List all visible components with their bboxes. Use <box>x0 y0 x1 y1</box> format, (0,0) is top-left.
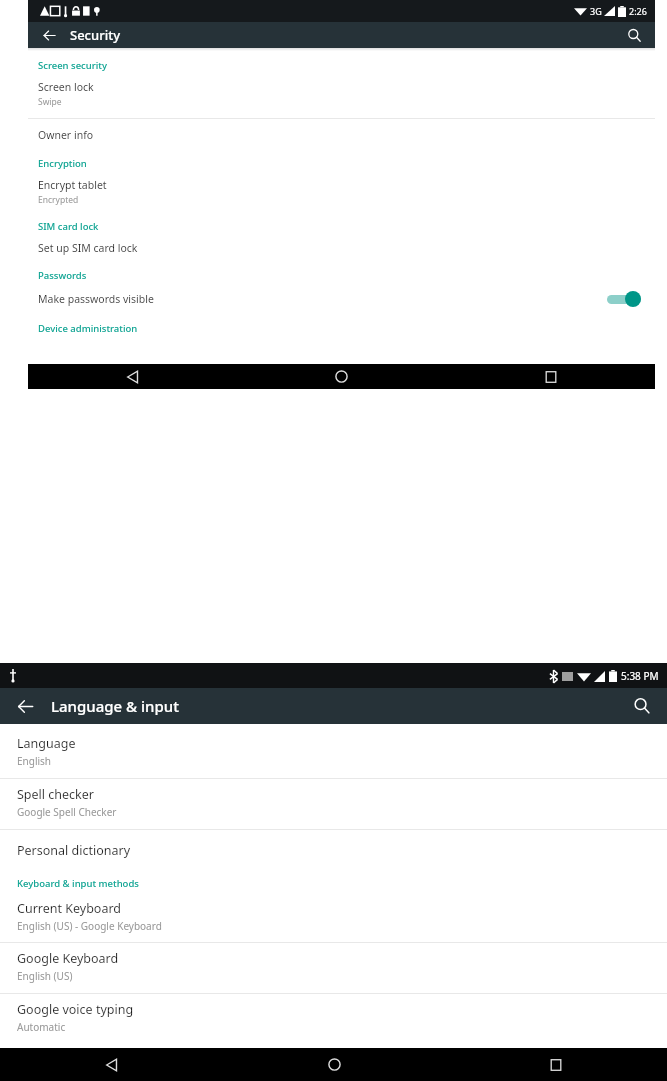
button[interactable]: Navigate up <box>11 692 39 720</box>
button[interactable]: Search <box>628 692 656 720</box>
button[interactable]: Home <box>237 364 446 389</box>
staticText: Encrypt tablet <box>38 178 107 192</box>
staticText: Screen lock <box>38 80 94 94</box>
button[interactable]: Recent apps <box>445 1048 667 1081</box>
staticText: Owner info <box>38 128 94 142</box>
staticText: Language & input <box>51 696 179 716</box>
button[interactable]: Navigate up <box>38 24 60 46</box>
staticText: Set up SIM card lock <box>38 241 138 255</box>
button[interactable]: Personal dictionary <box>0 830 667 871</box>
button[interactable]: Encrypt tablet <box>28 174 655 210</box>
button[interactable]: Owner info <box>28 119 655 151</box>
staticText: Security <box>70 26 120 44</box>
button[interactable] <box>607 290 641 308</box>
staticText: English <box>17 754 52 768</box>
button[interactable]: Screen lock <box>28 76 655 112</box>
button[interactable]: Language <box>0 728 667 775</box>
staticText: SIM card lock <box>38 220 99 233</box>
staticText: Screen security <box>38 59 107 72</box>
staticText: English (US) - Google Keyboard <box>17 919 162 933</box>
button[interactable]: Recent apps <box>446 364 655 389</box>
staticText: 2:26 <box>629 5 647 17</box>
staticText: Keyboard & input methods <box>17 877 139 890</box>
staticText: Encryption <box>38 157 87 170</box>
staticText: Google voice typing <box>17 1001 134 1018</box>
staticText: Google Spell Checker <box>17 805 117 819</box>
button[interactable]: Back <box>28 364 237 389</box>
button[interactable]: Set up SIM card lock <box>28 237 655 259</box>
staticText: Language <box>17 735 76 752</box>
staticText: Google Keyboard <box>17 950 119 967</box>
button[interactable]: Make passwords visible <box>28 286 655 312</box>
staticText: Passwords <box>38 269 87 282</box>
staticText: Make passwords visible <box>38 292 154 306</box>
button[interactable]: Spell checker <box>0 779 667 826</box>
button[interactable]: Search <box>623 24 645 46</box>
staticText: Personal dictionary <box>17 842 131 859</box>
button[interactable]: Current Keyboard <box>0 895 667 938</box>
button[interactable]: Home <box>223 1048 445 1081</box>
button[interactable]: Back <box>0 1048 223 1081</box>
staticText: English (US) <box>17 969 73 983</box>
staticText: 3G <box>590 5 602 17</box>
button[interactable]: Google voice typing <box>0 994 667 1041</box>
button[interactable]: Google Keyboard <box>0 943 667 990</box>
staticText: Automatic <box>17 1020 66 1034</box>
staticText: Current Keyboard <box>17 900 122 917</box>
staticText: Encrypted <box>38 194 79 206</box>
staticText: Spell checker <box>17 786 94 803</box>
staticText: Device administration <box>38 322 138 335</box>
staticText: 5:38 PM <box>621 669 659 683</box>
staticText: Swipe <box>38 96 62 108</box>
